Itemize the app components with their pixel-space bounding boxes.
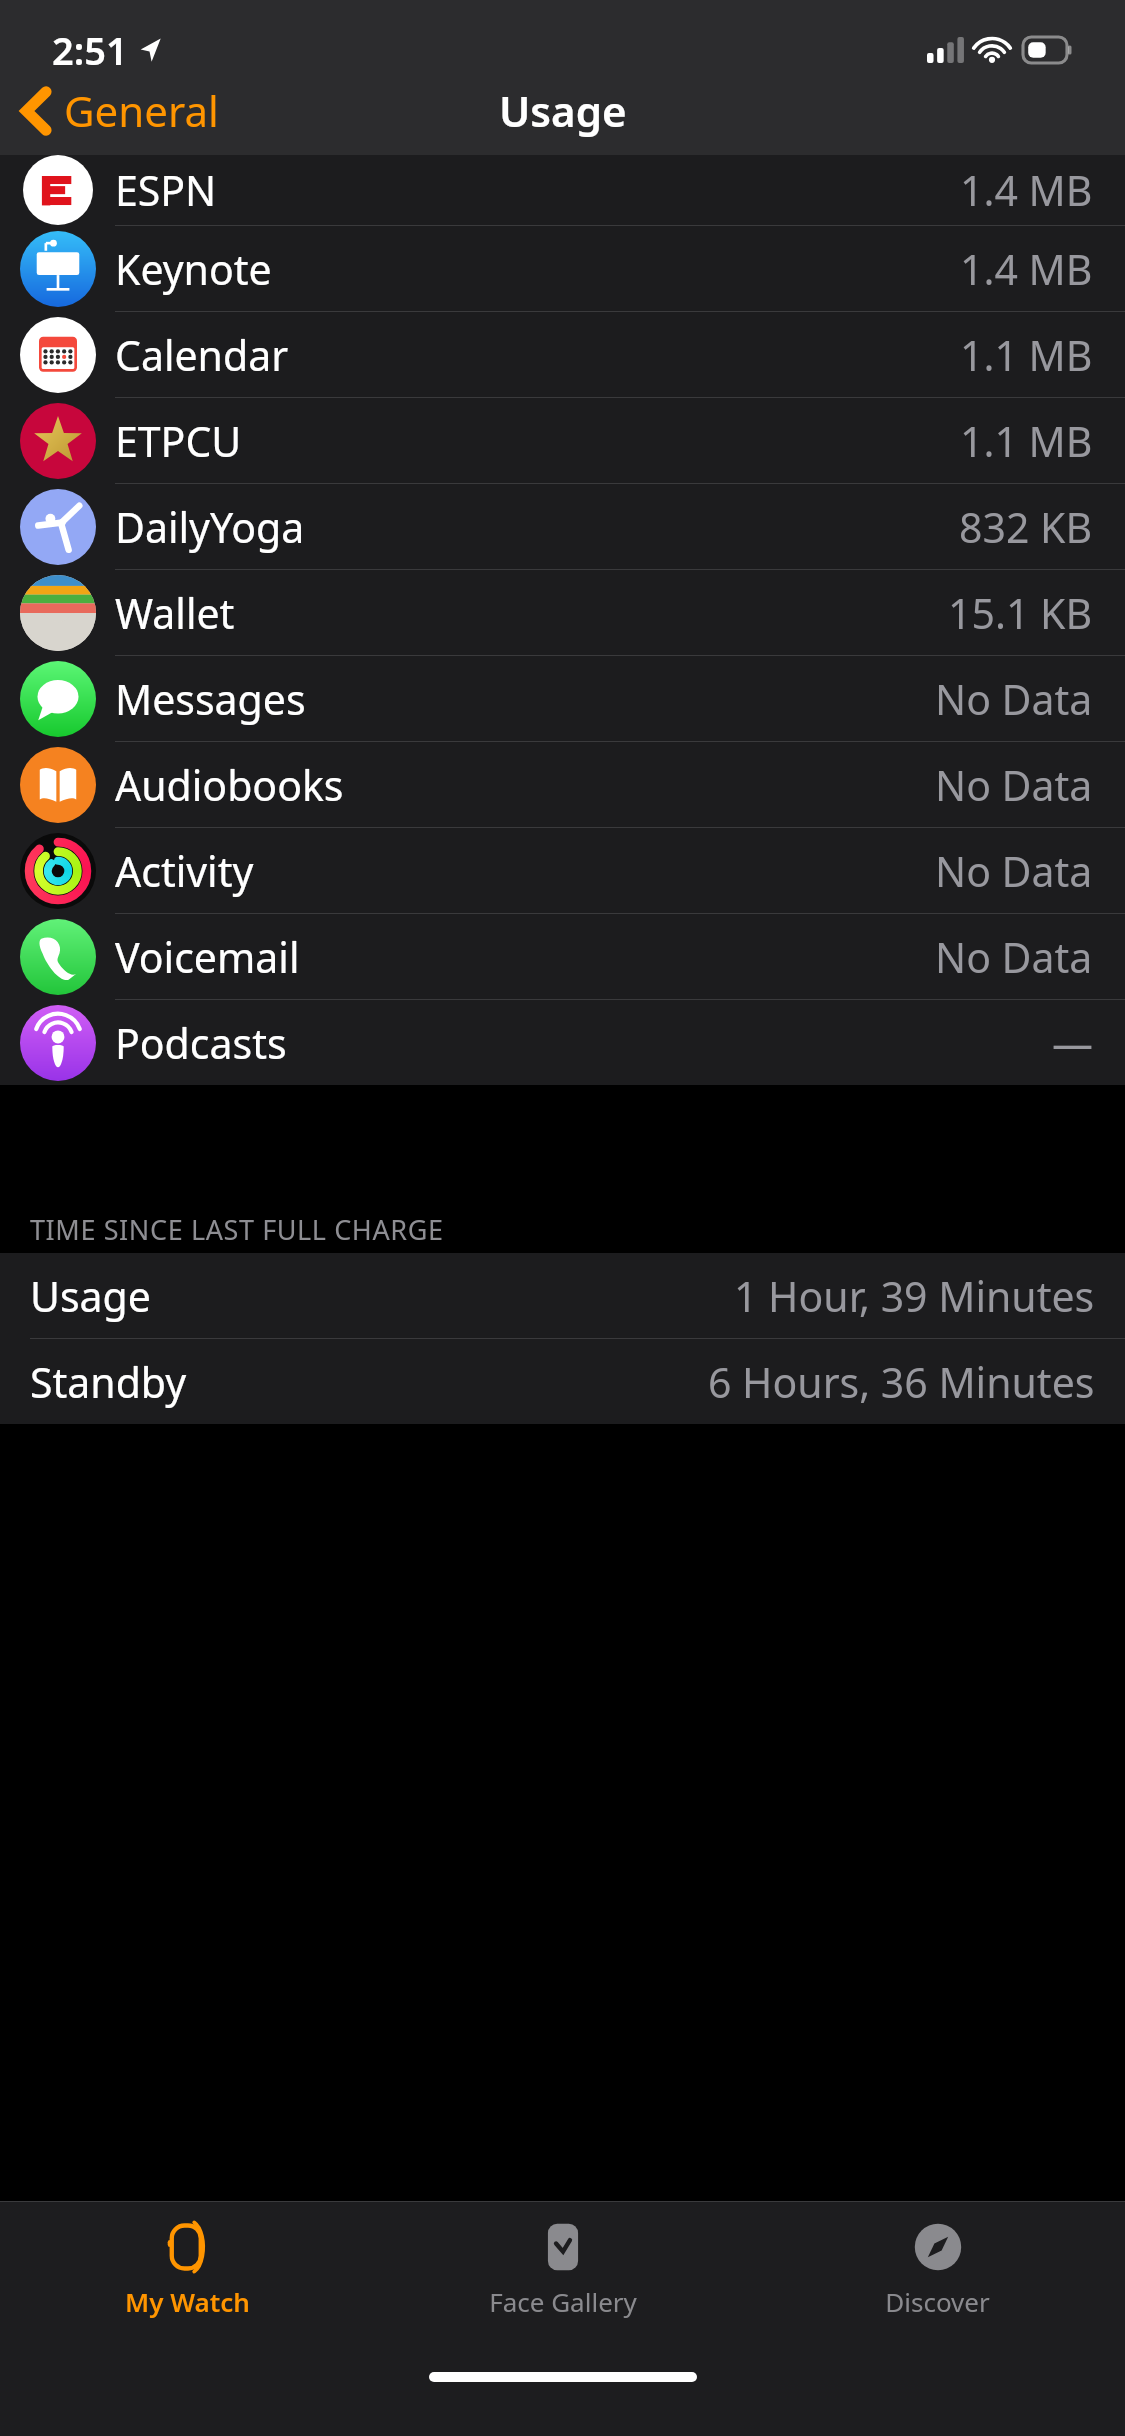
staticText: Audiobooks xyxy=(115,757,344,813)
staticText: No Data xyxy=(935,757,1093,813)
staticText: 1.4 MB xyxy=(960,241,1093,297)
button[interactable]: Audiobooks xyxy=(0,742,1125,827)
staticText: Voicemail xyxy=(115,929,300,985)
staticText: DailyYoga xyxy=(115,499,305,555)
staticText: 1.1 MB xyxy=(960,327,1093,383)
button[interactable]: Podcasts xyxy=(0,1000,1125,1085)
button[interactable]: Keynote xyxy=(0,226,1125,311)
staticText: No Data xyxy=(935,929,1093,985)
button[interactable]: Wallet xyxy=(0,570,1125,655)
staticText: Keynote xyxy=(115,241,272,297)
staticText: Standby xyxy=(30,1354,187,1410)
staticText: Messages xyxy=(115,671,306,727)
staticText: 1 Hour, 39 Minutes xyxy=(734,1268,1095,1324)
staticText: No Data xyxy=(935,671,1093,727)
button[interactable]: Standby xyxy=(0,1339,1125,1424)
staticText: My Watch xyxy=(125,2284,250,2319)
staticText: Face Gallery xyxy=(489,2284,637,2319)
staticText: Podcasts xyxy=(115,1015,287,1071)
staticText: ESPN xyxy=(115,162,217,218)
staticText: 2:51 xyxy=(52,24,128,76)
button[interactable]: Calendar xyxy=(0,312,1125,397)
button[interactable]: Voicemail xyxy=(0,914,1125,999)
button[interactable]: My Watch xyxy=(0,2202,375,2352)
button[interactable]: Messages xyxy=(0,656,1125,741)
staticText: TIME SINCE LAST FULL CHARGE xyxy=(30,1211,444,1248)
staticText: — xyxy=(1052,1015,1093,1071)
staticText: 832 KB xyxy=(959,499,1093,555)
button[interactable]: Face Gallery xyxy=(375,2202,750,2352)
staticText: Activity xyxy=(115,843,254,899)
staticText: 6 Hours, 36 Minutes xyxy=(708,1354,1095,1410)
button[interactable]: Usage xyxy=(0,1253,1125,1338)
staticText: Usage xyxy=(499,82,627,139)
button[interactable]: General xyxy=(0,72,237,149)
button[interactable]: ETPCU xyxy=(0,398,1125,483)
button[interactable]: ESPN xyxy=(0,155,1125,225)
button[interactable]: DailyYoga xyxy=(0,484,1125,569)
staticText: ETPCU xyxy=(115,413,242,469)
button[interactable]: Discover xyxy=(750,2202,1125,2352)
staticText: Wallet xyxy=(115,585,235,641)
staticText: Calendar xyxy=(115,327,289,383)
staticText: General xyxy=(64,82,219,139)
staticText: 1.1 MB xyxy=(960,413,1093,469)
staticText: No Data xyxy=(935,843,1093,899)
staticText: Usage xyxy=(30,1268,151,1324)
staticText: 1.4 MB xyxy=(960,162,1093,218)
staticText: 15.1 KB xyxy=(948,585,1093,641)
staticText: Discover xyxy=(885,2284,990,2319)
button[interactable]: Activity xyxy=(0,828,1125,913)
